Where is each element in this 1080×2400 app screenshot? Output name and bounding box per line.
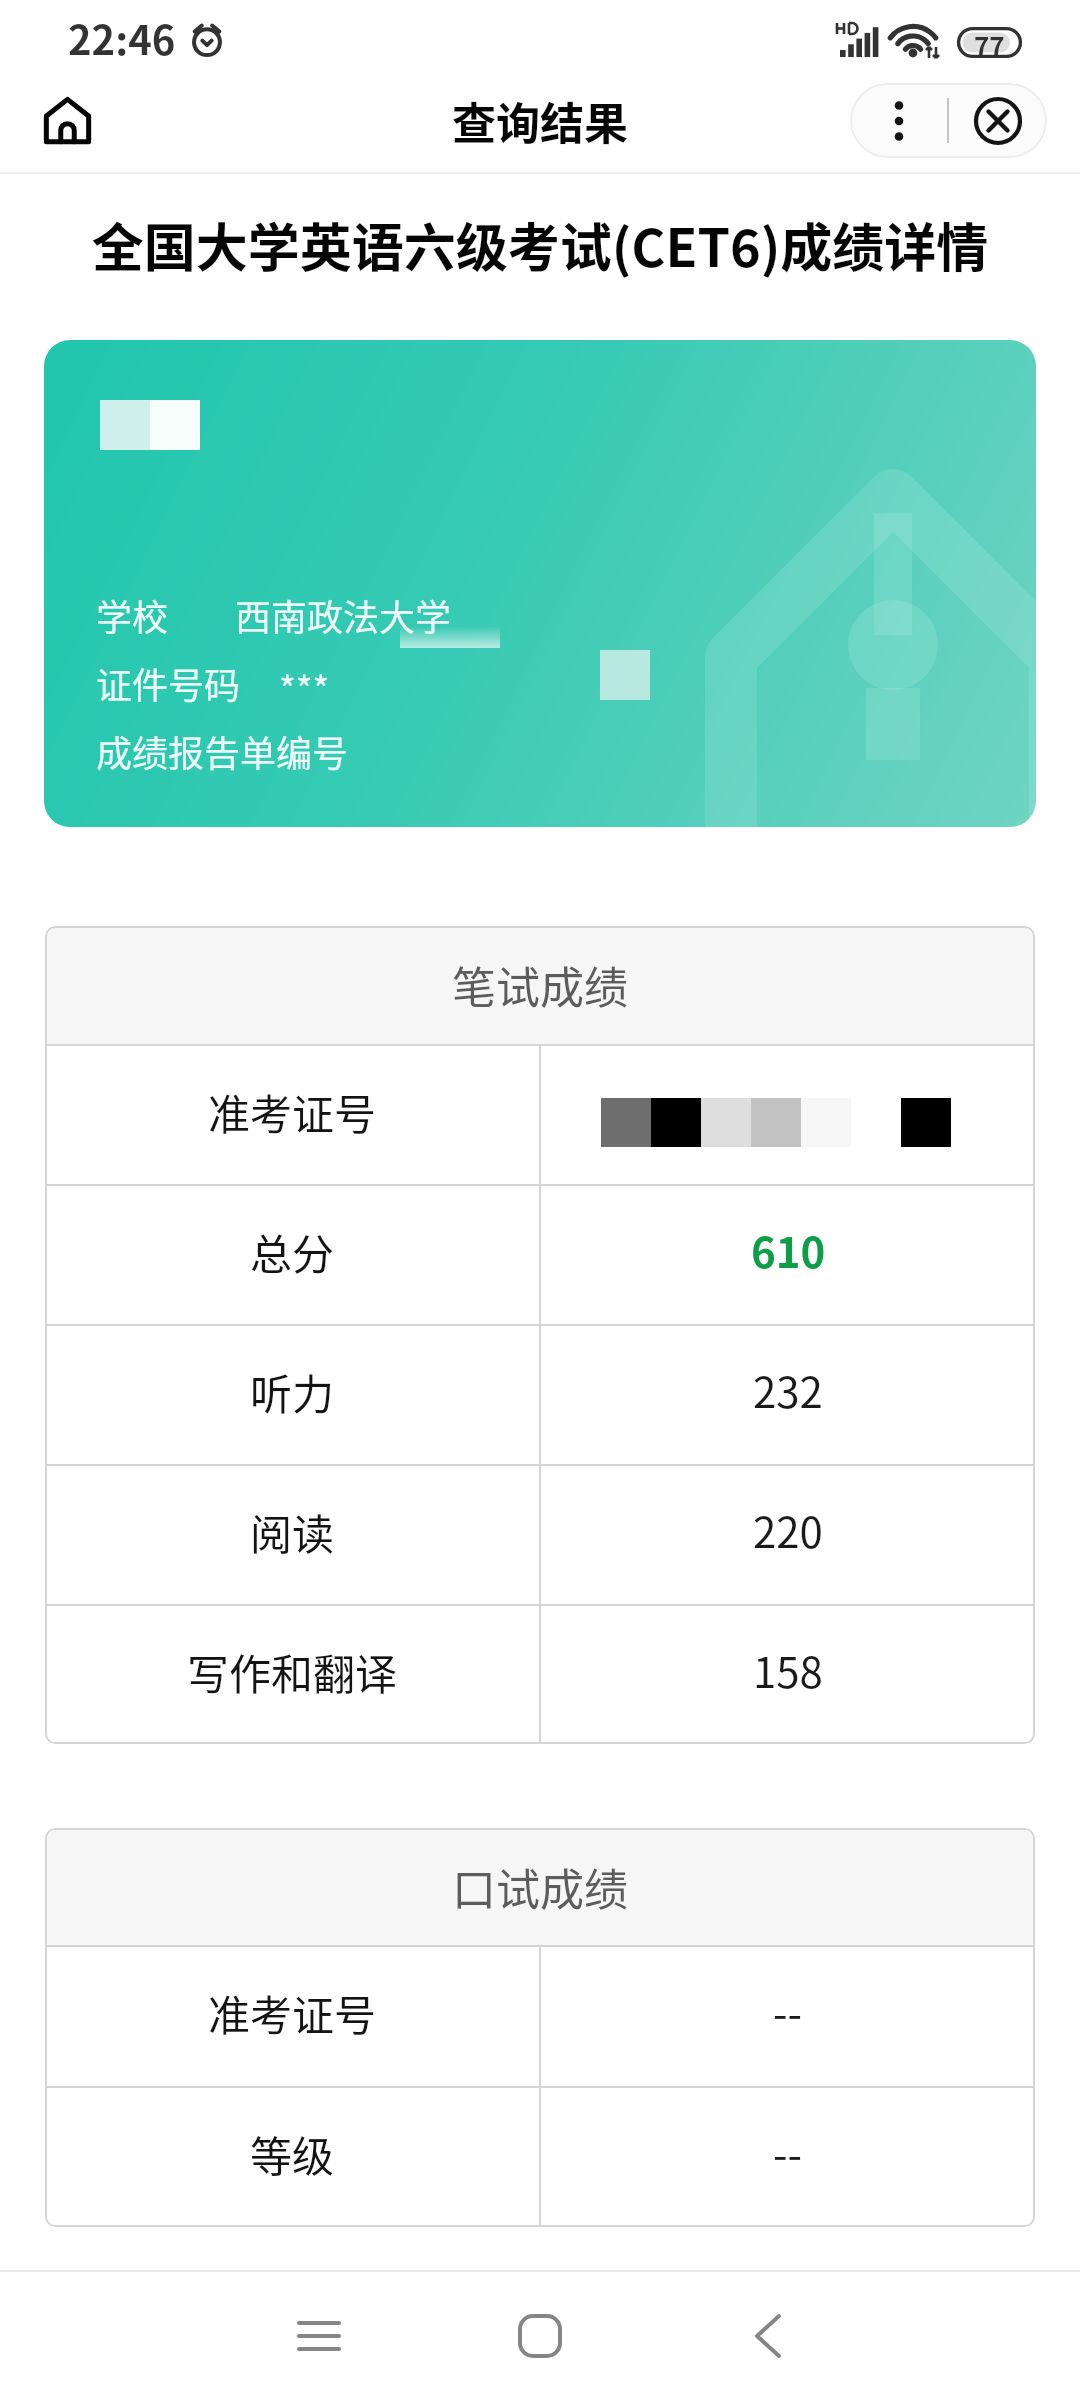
staticText: 学校 xyxy=(96,589,169,641)
staticText: 220 xyxy=(753,1499,823,1560)
staticText: -- xyxy=(773,2121,803,2182)
staticText: -- xyxy=(773,1980,803,2041)
button[interactable]: More options xyxy=(850,83,947,158)
staticText: 写作和翻译 xyxy=(187,1641,398,1702)
staticText: 听力 xyxy=(250,1361,335,1422)
button[interactable]: Home xyxy=(476,2272,604,2400)
button[interactable]: Home xyxy=(32,86,102,156)
button[interactable]: Recent apps xyxy=(255,2272,383,2400)
staticText: 等级 xyxy=(250,2123,335,2184)
staticText: 准考证号 xyxy=(208,1982,377,2043)
staticText: 西南政法大学 xyxy=(235,589,452,641)
staticText: 22:46 xyxy=(68,9,176,67)
staticText: 准考证号 xyxy=(208,1081,377,1142)
staticText: 77 xyxy=(974,26,1005,57)
staticText: 阅读 xyxy=(250,1501,335,1562)
staticText: 232 xyxy=(753,1359,823,1420)
staticText: 158 xyxy=(753,1639,823,1700)
staticText: 证件号码 xyxy=(96,657,241,709)
staticText: 全国大学英语六级考试(CET6)成绩详情 xyxy=(0,207,1080,282)
staticText: *** xyxy=(279,661,330,713)
staticText: 口试成绩 xyxy=(452,1855,628,1919)
button[interactable]: Close xyxy=(949,83,1047,158)
staticText: 610 xyxy=(751,1219,826,1280)
button[interactable]: 学校 xyxy=(44,340,1036,827)
staticText: 成绩报告单编号 xyxy=(96,725,349,777)
button[interactable]: Back xyxy=(704,2272,832,2400)
staticText: 总分 xyxy=(250,1221,335,1282)
staticText: 笔试成绩 xyxy=(452,953,628,1017)
staticText: 查询结果 xyxy=(0,89,1080,153)
